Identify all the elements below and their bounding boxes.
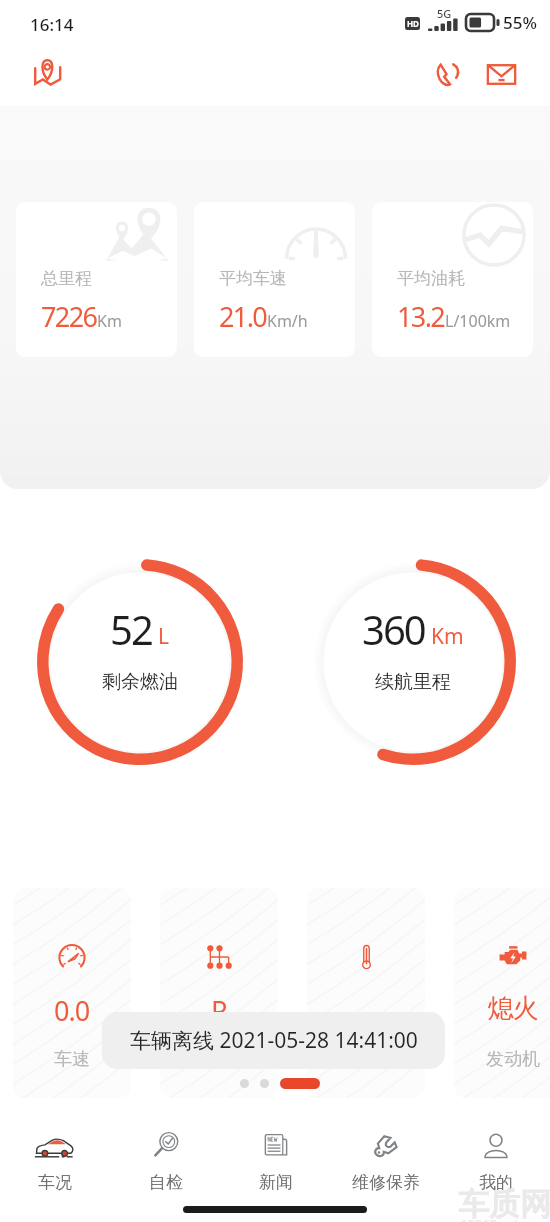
staticText: 13.2	[397, 298, 445, 335]
staticText: 0.0	[54, 992, 90, 1029]
button[interactable]: 维修保养	[344, 1120, 428, 1198]
button[interactable]: P	[160, 888, 278, 1098]
staticText: Km/h	[267, 310, 308, 332]
staticText: 16:14	[30, 13, 74, 36]
staticText: 维修保养	[352, 1172, 420, 1193]
staticText: 新闻	[259, 1172, 293, 1193]
button[interactable]: Call	[424, 52, 468, 96]
staticText: 52	[110, 602, 152, 656]
staticText: Km	[97, 310, 122, 332]
staticText: 平均油耗	[397, 268, 465, 289]
staticText: L/100km	[445, 310, 511, 332]
staticText: 车辆离线 2021-05-28 14:41:00	[130, 1026, 418, 1055]
staticText: 自检	[149, 1172, 183, 1193]
staticText: 剩余燃油	[102, 670, 178, 694]
staticText: 12365auto.com	[460, 1215, 550, 1222]
staticText: 车速	[54, 1048, 90, 1071]
staticText: 熄火	[488, 992, 538, 1025]
button[interactable]: Map	[26, 51, 70, 95]
button[interactable]: 52	[37, 559, 243, 765]
staticText: 21.0	[219, 298, 267, 335]
button[interactable]: 新闻	[234, 1120, 318, 1198]
button[interactable]: 0.0	[13, 888, 131, 1098]
button[interactable]: 360	[310, 559, 516, 765]
staticText: 车况	[38, 1172, 72, 1193]
staticText: --	[358, 992, 374, 1029]
staticText: L	[158, 622, 170, 651]
button[interactable]: 平均油耗	[372, 202, 533, 357]
staticText: 我的	[479, 1172, 513, 1193]
staticText: 总里程	[41, 268, 92, 289]
staticText: 发动机	[486, 1048, 540, 1071]
staticText: 360	[362, 602, 425, 656]
button[interactable]: Messages	[479, 52, 523, 96]
button[interactable]: 自检	[124, 1120, 208, 1198]
button[interactable]: 我的	[454, 1120, 538, 1198]
staticText: 车质网	[458, 1185, 550, 1222]
staticText: 7226	[41, 298, 97, 335]
staticText: 55%	[503, 11, 537, 34]
staticText: HD	[407, 18, 419, 29]
staticText: 车外温度	[330, 1048, 402, 1071]
button[interactable]: 熄火	[454, 888, 550, 1098]
button[interactable]: 总里程	[16, 202, 177, 357]
button[interactable]: 车况	[13, 1120, 97, 1198]
staticText: Km	[431, 622, 464, 651]
button[interactable]: --	[307, 888, 425, 1098]
staticText: 平均车速	[219, 268, 287, 289]
button[interactable]: 平均车速	[194, 202, 355, 357]
staticText: P	[211, 992, 227, 1029]
staticText: 5G	[437, 6, 452, 21]
staticText: 续航里程	[375, 670, 451, 694]
staticText: 档位	[201, 1048, 237, 1071]
